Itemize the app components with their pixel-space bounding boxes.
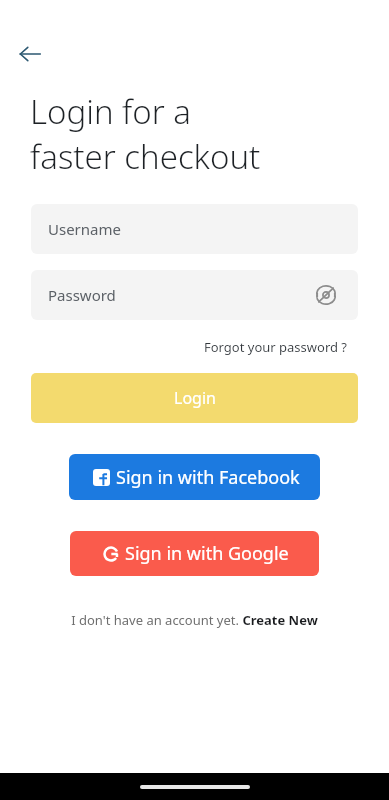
button[interactable]: Login xyxy=(31,373,358,423)
staticText: Login for a faster checkout xyxy=(30,89,261,178)
button[interactable]: Sign in with Google xyxy=(70,531,319,576)
button[interactable]: Sign in with Facebook xyxy=(69,454,320,500)
button[interactable]: I don't have an account yet. Create New xyxy=(67,608,322,632)
staticText: Login xyxy=(174,387,216,409)
staticText: Forgot your password ? xyxy=(204,338,348,356)
staticText: Sign in with Facebook xyxy=(116,465,300,490)
button[interactable]: Show password xyxy=(311,280,341,310)
button[interactable]: Password xyxy=(31,270,358,320)
staticText: Password xyxy=(48,285,116,305)
button[interactable]: Username xyxy=(31,204,358,254)
button[interactable]: Back xyxy=(10,34,50,74)
staticText: Username xyxy=(48,219,121,239)
staticText: Sign in with Google xyxy=(125,541,289,566)
staticText: I don't have an account yet. Create New xyxy=(71,611,318,629)
button[interactable]: Forgot your password ? xyxy=(202,336,350,358)
